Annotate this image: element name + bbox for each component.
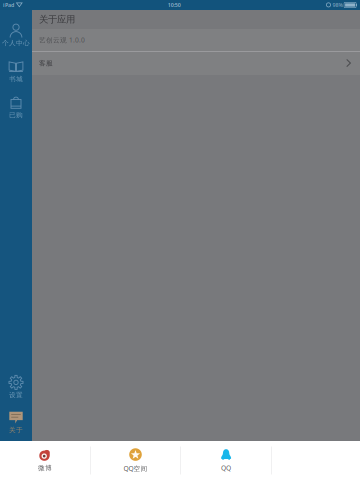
button[interactable]: 个人中心: [0, 22, 32, 48]
button[interactable]: 已购: [0, 94, 32, 120]
button[interactable]: QQ空间: [90, 441, 180, 480]
staticText: 艺创云观 1.0.0: [39, 36, 85, 44]
staticText: 书城: [9, 75, 23, 83]
button[interactable]: QQ: [181, 441, 271, 480]
staticText: 98%: [333, 1, 343, 9]
button[interactable]: 客服: [32, 51, 360, 75]
staticText: 10:50: [168, 1, 181, 9]
button[interactable]: 关于: [0, 409, 32, 435]
button[interactable]: 书城: [0, 58, 32, 84]
button[interactable]: 设置: [0, 374, 32, 400]
staticText: 个人中心: [2, 39, 30, 47]
staticText: QQ: [221, 464, 231, 472]
staticText: 关于: [9, 426, 23, 434]
staticText: 设置: [9, 391, 23, 399]
staticText: 客服: [39, 59, 53, 67]
button[interactable]: 微博: [0, 441, 90, 480]
staticText: QQ空间: [123, 464, 147, 473]
staticText: 已购: [9, 111, 23, 119]
staticText: 微博: [38, 464, 52, 472]
staticText: iPad: [3, 1, 14, 9]
staticText: 关于应用: [39, 14, 75, 25]
